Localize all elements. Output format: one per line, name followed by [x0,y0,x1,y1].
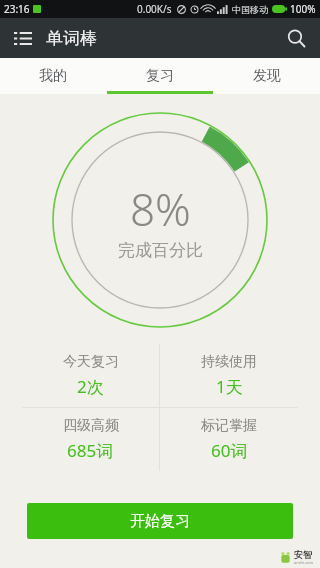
button[interactable]: 持续使用 [160,344,298,407]
button[interactable]: Search [272,18,320,58]
staticText: 中国移动 [232,4,268,15]
staticText: 今天复习 [63,353,119,371]
staticText: 100% [290,2,316,16]
staticText: 四级高频 [63,417,119,435]
staticText: 我的 [39,67,67,85]
staticText: 开始复习 [130,512,190,531]
staticText: 单词棒 [46,28,97,49]
staticText: 685词 [67,439,114,462]
staticText: 完成百分比 [118,240,203,261]
staticText: 1天 [216,375,243,398]
button[interactable]: 复习 [106,58,213,94]
staticText: 发现 [253,67,281,85]
staticText: anzhi.com [294,560,314,565]
staticText: 2次 [77,375,104,398]
button[interactable]: 开始复习 [27,503,293,539]
button[interactable]: 发现 [213,58,320,94]
staticText: 复习 [146,67,174,85]
button[interactable]: Menu [0,18,46,58]
staticText: 0.00K/s [137,2,172,16]
staticText: 持续使用 [201,353,257,371]
button[interactable]: 四级高频 [22,408,159,471]
button[interactable]: 标记掌握 [160,408,298,471]
staticText: 8% [130,179,191,239]
staticText: 23:16 [4,2,30,16]
button[interactable]: 我的 [0,58,106,94]
staticText: 60词 [211,439,248,462]
staticText: 安智 [294,549,312,560]
button[interactable]: 今天复习 [22,344,159,407]
staticText: 标记掌握 [201,417,257,435]
